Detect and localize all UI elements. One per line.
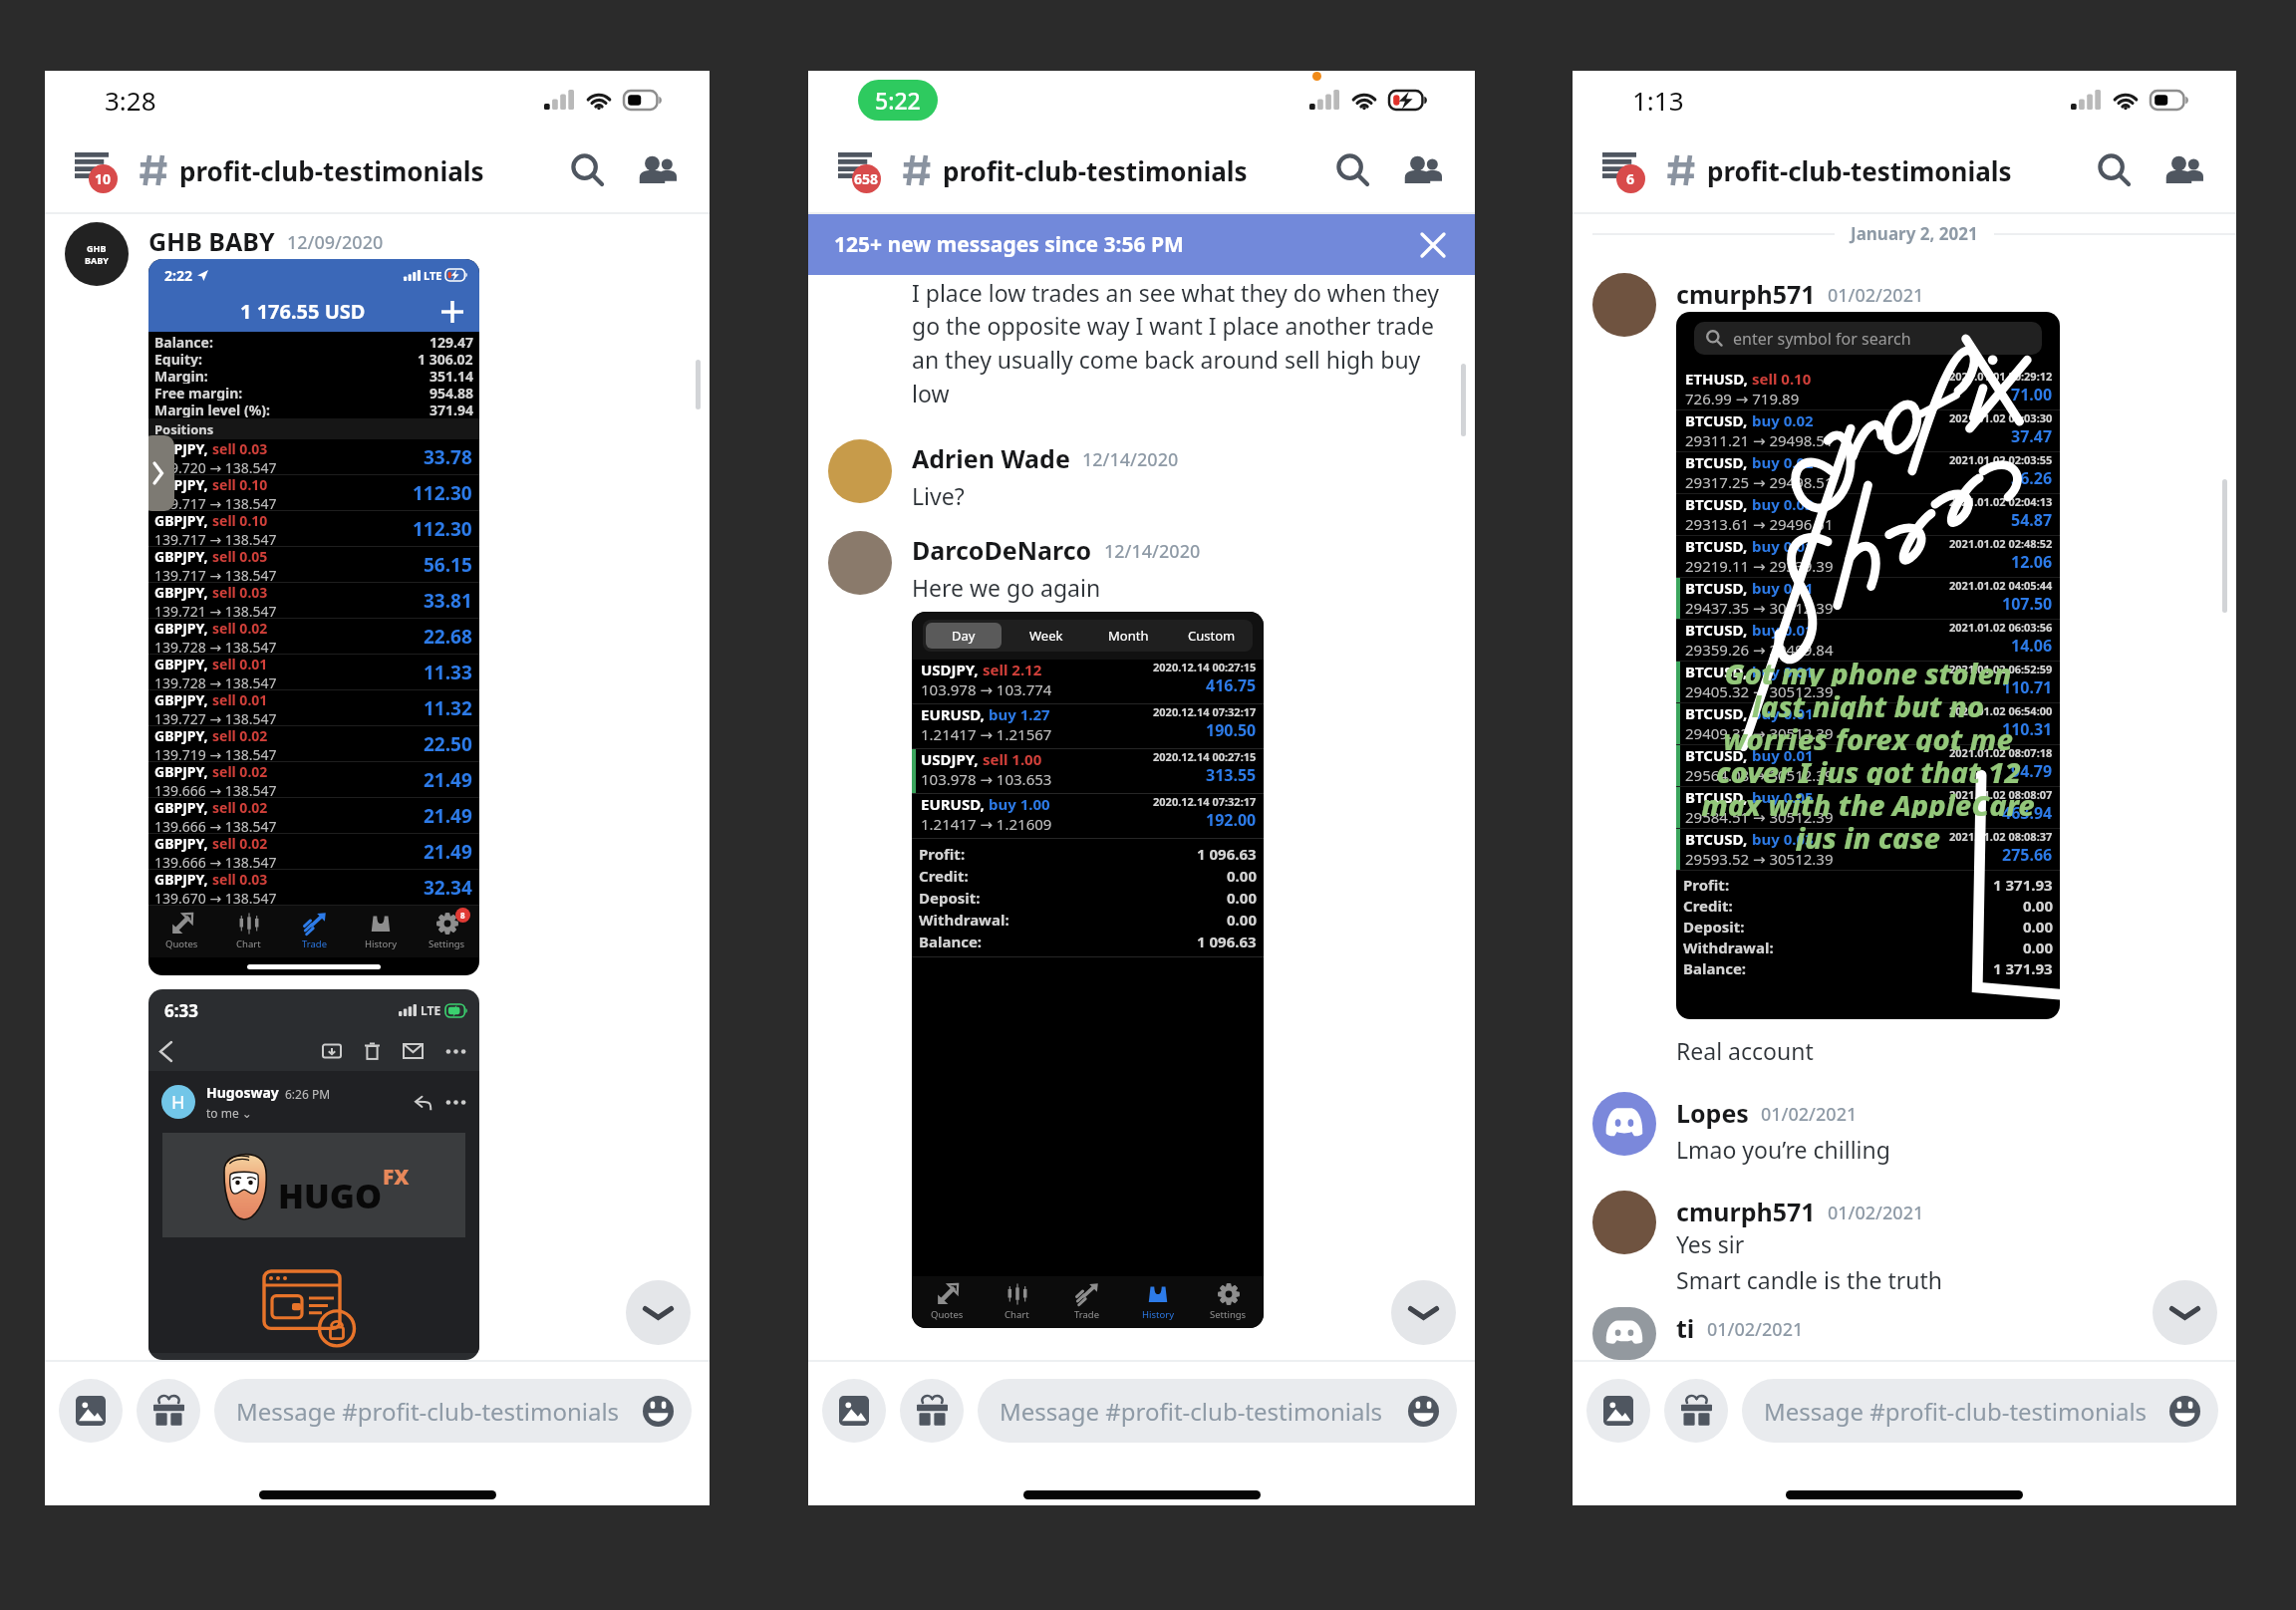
button[interactable]: Jump to present <box>1391 1280 1456 1345</box>
staticText: 192.00 <box>1206 809 1257 831</box>
staticText: 12/14/2020 <box>1104 539 1201 564</box>
button[interactable]: Members <box>1395 142 1451 198</box>
staticText: 2021.01.02 08:08:07 <box>1949 787 2053 802</box>
button[interactable]: Settings <box>1193 1276 1264 1328</box>
staticText: Message #profit-club-testimonials <box>1000 1395 1383 1428</box>
button[interactable]: Custom <box>1173 623 1250 649</box>
staticText: GBPJPY, <box>154 690 212 709</box>
button[interactable]: Day <box>926 623 1002 649</box>
staticText: 463.94 <box>2002 802 2053 824</box>
staticText: profit-club-testimonials <box>1707 153 2012 188</box>
staticText: buy 0.01 <box>1752 620 1814 640</box>
button[interactable]: Search <box>2087 142 2143 198</box>
staticText: BTCUSD, <box>1685 494 1752 514</box>
staticText: 2021.01.02 02:03:30 <box>1949 410 2053 425</box>
button[interactable]: Chart <box>215 906 282 957</box>
staticText: Withdrawal: <box>919 910 1009 930</box>
button[interactable]: Send a gift <box>900 1379 964 1443</box>
staticText: buy 0.01 <box>1752 578 1814 598</box>
staticText: 1 371.93 <box>1993 875 2053 895</box>
staticText: Got my phone stolen <box>1724 654 2012 686</box>
button[interactable]: Send a gift <box>1664 1379 1728 1443</box>
staticText: max with the AppleCare <box>1701 785 2035 818</box>
staticText: buy 0.01 <box>1752 745 1814 765</box>
button[interactable]: Message #profit-club-testimonials <box>978 1379 1457 1443</box>
staticText: Smart candle is the truth <box>1676 1264 1942 1295</box>
button[interactable]: Upload image <box>822 1379 886 1443</box>
button[interactable]: Settings <box>414 906 479 957</box>
staticText: 94.79 <box>2011 760 2053 782</box>
staticText: 22.68 <box>424 624 472 650</box>
button[interactable]: Week <box>1007 623 1084 649</box>
staticText: 01/02/2021 <box>1828 283 1924 308</box>
button[interactable]: Members <box>630 142 686 198</box>
staticText: GBPJPY, <box>154 583 212 602</box>
staticText: sell 0.03 <box>212 439 268 458</box>
button[interactable]: Upload image <box>1586 1379 1650 1443</box>
staticText: 416.75 <box>1206 674 1257 696</box>
staticText: sell 0.01 <box>212 690 268 709</box>
button[interactable]: Members <box>2156 142 2212 198</box>
staticText: 371.94 <box>430 401 473 417</box>
button[interactable]: Search <box>560 142 616 198</box>
staticText: profit-club-testimonials <box>943 153 1248 188</box>
staticText: 6:33 <box>164 999 198 1022</box>
staticText: BTCUSD, <box>1685 745 1752 765</box>
staticText: 1 306.02 <box>418 350 473 367</box>
staticText: 37.47 <box>2011 425 2053 447</box>
staticText: LTE <box>424 268 442 283</box>
button[interactable]: Jump to present <box>626 1280 691 1345</box>
button[interactable]: Quotes <box>148 906 215 957</box>
button[interactable]: Trade <box>282 906 348 957</box>
button[interactable]: Chart <box>982 1276 1051 1328</box>
staticText: 139.666 → 138.547 <box>154 781 277 797</box>
staticText: Custom <box>1188 627 1236 645</box>
staticText: Balance: <box>919 932 983 951</box>
staticText: 29409.32 → 30512.39 <box>1685 723 1834 743</box>
button[interactable]: Jump to present <box>2152 1280 2217 1345</box>
staticText: sell 0.02 <box>212 834 268 853</box>
staticText: 21.49 <box>424 839 472 865</box>
button[interactable]: Message #profit-club-testimonials <box>214 1379 692 1443</box>
staticText: 954.88 <box>430 384 473 401</box>
button[interactable]: Open channel list <box>63 140 129 200</box>
button[interactable]: Dismiss <box>1413 225 1453 265</box>
staticText: sell 2.12 <box>983 660 1042 679</box>
button[interactable]: Trade <box>1051 1276 1122 1328</box>
staticText: buy 0.03 <box>1752 494 1814 514</box>
staticText: 1.21417 → 1.21567 <box>921 724 1052 744</box>
staticText: sell 0.02 <box>212 619 268 638</box>
button[interactable]: Message #profit-club-testimonials <box>1742 1379 2218 1443</box>
staticText: BTCUSD, <box>1685 410 1752 430</box>
staticText: 2021.01.02 06:52:59 <box>1949 662 2053 676</box>
staticText: Live? <box>912 480 965 511</box>
button[interactable]: Search <box>1325 142 1381 198</box>
staticText: 22.50 <box>424 731 472 757</box>
staticText: sell 1.00 <box>983 749 1042 769</box>
staticText: buy 0.03 <box>1752 829 1814 849</box>
staticText: 2021.01.02 06:54:00 <box>1949 703 2053 718</box>
staticText: Lmao you’re chilling <box>1676 1134 1890 1165</box>
staticText: 2020.12.14 00:27:15 <box>1153 749 1257 764</box>
button[interactable]: History <box>1122 1276 1193 1328</box>
staticText: Equity: <box>154 350 202 367</box>
button[interactable]: Upload image <box>59 1379 123 1443</box>
button[interactable]: History <box>348 906 414 957</box>
staticText: sell 0.01 <box>212 655 268 673</box>
staticText: I place low trades an see what they do w… <box>912 277 1449 409</box>
staticText: Credit: <box>919 866 969 886</box>
staticText: 112.30 <box>413 480 472 506</box>
staticText: 190.50 <box>1206 719 1257 741</box>
staticText: 110.71 <box>2002 676 2053 698</box>
staticText: 2020.12.14 00:27:15 <box>1153 660 1257 674</box>
staticText: Day <box>952 627 976 645</box>
button[interactable]: Quotes <box>912 1276 982 1328</box>
button[interactable]: Open channel list <box>826 140 892 200</box>
button[interactable]: Month <box>1090 623 1167 649</box>
staticText: Margin: <box>154 367 208 384</box>
staticText: 139.717 → 138.547 <box>154 530 277 546</box>
staticText: sell 0.10 <box>212 511 268 530</box>
staticText: Deposit: <box>1683 917 1745 937</box>
button[interactable]: Send a gift <box>137 1379 200 1443</box>
button[interactable]: Open channel list <box>1590 140 1656 200</box>
